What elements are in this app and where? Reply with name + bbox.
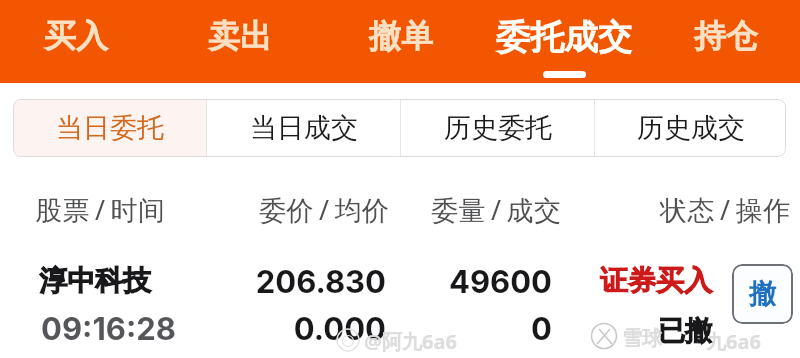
staticText: 当日委托 (56, 111, 164, 145)
button[interactable]: 淳中科技 (0, 240, 800, 358)
staticText: 撤单 (369, 16, 433, 56)
staticText: @阿九6a6 (364, 328, 457, 355)
staticText: 49600 (392, 263, 552, 301)
button[interactable]: 历史委托 (401, 99, 594, 157)
button[interactable]: 撤单 (732, 264, 793, 324)
staticText: 持仓 (694, 16, 758, 56)
staticText: 0 (392, 310, 552, 348)
button[interactable]: 当日委托 (13, 99, 206, 157)
button[interactable]: 当日成交 (207, 99, 400, 157)
staticText: 206.830 (186, 263, 386, 301)
staticText: 委托成交 (496, 16, 632, 59)
staticText: 委量 / 成交 (431, 191, 562, 228)
staticText: 已撤 (658, 314, 712, 348)
button[interactable]: 持仓 (676, 0, 776, 83)
staticText: 09:16:28 (41, 310, 176, 348)
staticText: 状态 / 操作 (660, 191, 791, 228)
staticText: 股票 / 时间 (35, 191, 166, 228)
staticText: 雪球 (622, 326, 662, 351)
staticText: 0.000 (186, 310, 386, 348)
staticText: 委价 / 均价 (259, 191, 390, 228)
staticText: 买入 (44, 16, 108, 56)
button[interactable]: 卖出 (190, 0, 290, 83)
staticText: 撤 (749, 277, 776, 311)
staticText: 九6a6 (706, 328, 761, 355)
staticText: 证券买入 (600, 263, 712, 298)
button[interactable]: 买入 (26, 0, 126, 83)
staticText: 当日成交 (250, 111, 358, 145)
staticText: 卖出 (208, 16, 272, 56)
staticText: 历史委托 (444, 111, 552, 145)
button[interactable]: 历史成交 (595, 99, 786, 157)
staticText: 淳中科技 (39, 263, 151, 298)
button[interactable]: 撤单 (351, 0, 451, 83)
staticText: 历史成交 (637, 111, 745, 145)
button[interactable]: 委托成交 (484, 0, 644, 83)
